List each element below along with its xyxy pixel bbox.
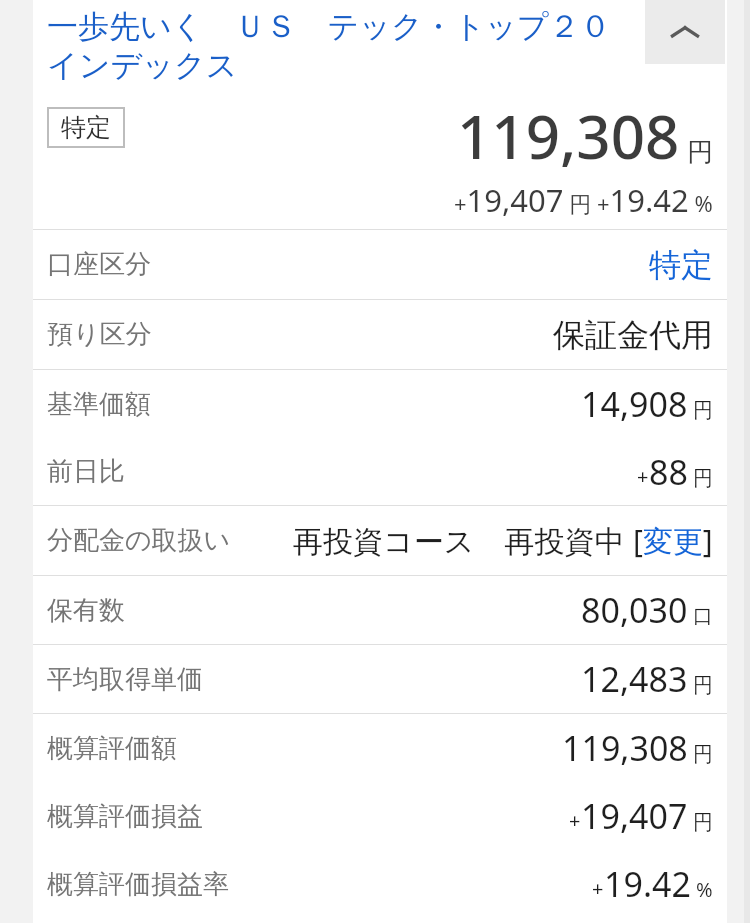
staticText: 平均取得単価	[47, 663, 203, 696]
staticText: 特定	[61, 112, 111, 143]
staticText: 円	[693, 466, 713, 491]
staticText: 概算評価額	[47, 732, 177, 765]
staticText: 一歩先いく ＵＳ テック・トップ２０	[47, 4, 611, 46]
staticText: %	[696, 876, 713, 903]
staticText: 基準価額	[47, 388, 151, 421]
staticText: 再投資コース 再投資中	[293, 520, 633, 561]
staticText: +	[637, 463, 649, 490]
staticText: 円	[693, 742, 713, 767]
staticText: 80,030	[581, 587, 688, 633]
staticText: +	[569, 807, 581, 834]
staticText: 円	[693, 673, 713, 698]
button[interactable]: 基準価額	[33, 370, 727, 438]
button[interactable]: 平均取得単価	[33, 645, 727, 713]
staticText: 19.42	[604, 861, 691, 907]
staticText: +	[592, 875, 604, 902]
button[interactable]: 概算評価損益	[33, 782, 727, 850]
button[interactable]: 保有数	[33, 576, 727, 644]
staticText: インデックス	[47, 46, 238, 85]
staticText: 概算評価損益	[47, 800, 203, 833]
staticText: 分配金の取扱い	[47, 524, 231, 557]
button[interactable]: 特定	[47, 107, 125, 148]
staticText: 円	[693, 398, 713, 423]
staticText: 円	[693, 810, 713, 835]
staticText: 保証金代用	[553, 315, 713, 355]
button[interactable]: 概算評価損益率	[33, 850, 727, 918]
staticText: 119,308	[457, 95, 680, 177]
staticText: 119,308	[562, 725, 688, 771]
button[interactable]: 口座区分	[33, 230, 727, 299]
button[interactable]: 預り区分	[33, 300, 727, 369]
staticText: +19,407 円 +19.42 %	[454, 179, 713, 221]
staticText: 前日比	[47, 455, 125, 488]
staticText: 12,483	[581, 656, 688, 702]
button[interactable]: 特定	[649, 245, 713, 285]
staticText: 88	[649, 449, 688, 495]
staticText: 口	[693, 604, 713, 629]
staticText: 円	[687, 136, 713, 169]
button[interactable]: 前日比	[33, 438, 727, 505]
staticText: 19,407	[581, 793, 688, 839]
button[interactable]: 折りたたむ	[645, 0, 725, 64]
button[interactable]: [変更]	[633, 520, 713, 561]
button[interactable]: 概算評価額	[33, 714, 727, 782]
staticText: 保有数	[47, 594, 125, 627]
staticText: 預り区分	[47, 318, 152, 351]
staticText: 口座区分	[47, 248, 151, 281]
staticText: 概算評価損益率	[47, 868, 229, 901]
staticText: 14,908	[581, 381, 688, 427]
button[interactable]: 分配金の取扱い	[33, 506, 727, 575]
